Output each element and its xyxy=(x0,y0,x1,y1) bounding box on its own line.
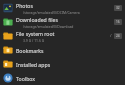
staticText: Bookmarks xyxy=(16,47,44,54)
staticText: 32 xyxy=(116,6,120,10)
staticText: /storage/emulated/0/DCIM/Camera xyxy=(23,10,80,15)
staticText: Photos xyxy=(16,2,33,9)
button[interactable]: Photos xyxy=(0,1,125,15)
button[interactable]: Installed apps xyxy=(0,57,125,71)
other: Photos xyxy=(3,3,13,13)
staticText: /storage/emulated/0/Download xyxy=(23,24,74,29)
staticText: 3.9 G / 11.6 G xyxy=(23,38,45,43)
staticText: 24 xyxy=(116,34,120,38)
button[interactable]: Downloaded files xyxy=(0,15,125,29)
staticText: Installed apps xyxy=(16,61,51,68)
other: Bookmarks xyxy=(3,45,13,55)
staticText: / xyxy=(110,33,112,39)
other: Downloaded files xyxy=(3,17,13,27)
other: Installed apps xyxy=(3,59,13,69)
staticText: Toolbox xyxy=(16,75,36,82)
button[interactable]: File system root xyxy=(0,29,125,43)
staticText: File system root xyxy=(16,30,55,37)
other: File system root xyxy=(3,31,13,41)
button[interactable]: Bookmarks xyxy=(0,43,125,57)
staticText: Downloaded files xyxy=(16,16,59,23)
staticText: 16 xyxy=(116,20,120,24)
button[interactable]: Toolbox xyxy=(0,71,125,85)
other: Toolbox xyxy=(3,73,13,83)
